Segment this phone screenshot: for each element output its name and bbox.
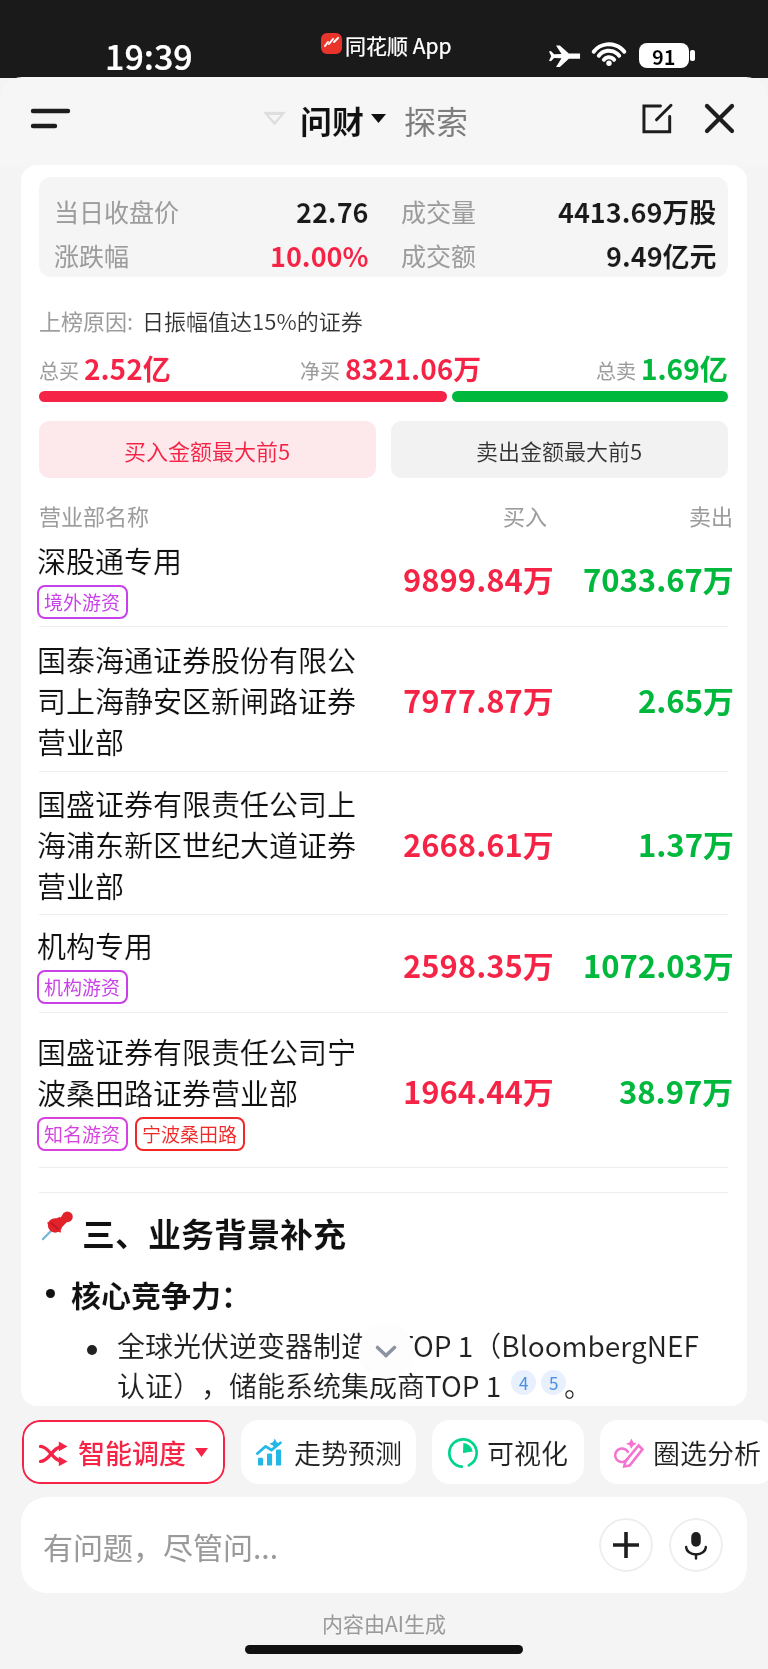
staticText: 日振幅值达15%的证券 [142, 304, 363, 336]
staticText: 涨跌幅 [54, 237, 130, 273]
staticText: 卖出金额最大前5 [476, 434, 643, 466]
staticText: 营业部 [37, 864, 125, 905]
staticText: 成交额 [401, 237, 477, 273]
staticText: 有问题，尽管问... [43, 1524, 279, 1567]
staticText: 2.65万 [638, 677, 734, 722]
staticText: 91 [652, 43, 676, 67]
staticText: 22.76 [296, 192, 369, 231]
staticText: 1.37万 [638, 821, 734, 866]
staticText: 1.69亿 [641, 348, 728, 389]
staticText: 国泰海通证券股份有限公 [37, 638, 357, 679]
staticText: 国盛证券有限责任公司上 [37, 782, 357, 823]
staticText: 2.52亿 [84, 348, 171, 389]
staticText: 上榜原因: [39, 304, 134, 336]
staticText: 波桑田路证券营业部 [37, 1071, 299, 1112]
staticText: 问财 [300, 97, 365, 143]
button[interactable]: Expand [358, 1323, 414, 1379]
staticText: 8321.06万 [345, 348, 482, 389]
button[interactable]: 探索 [404, 97, 469, 143]
staticText: 总卖 [596, 356, 636, 385]
staticText: 1072.03万 [583, 942, 734, 987]
staticText: 国盛证券有限责任公司宁 [37, 1030, 357, 1071]
staticText: 4413.69万股 [558, 192, 717, 231]
staticText: 1964.44万 [403, 1068, 554, 1113]
staticText: 2598.35万 [403, 942, 554, 987]
button[interactable]: Close [691, 90, 747, 146]
staticText: 营业部 [37, 720, 125, 761]
staticText: 9.49亿元 [606, 236, 717, 275]
staticText: 机构游资 [44, 973, 121, 1001]
staticText: 全球光伏逆变器制造商TOP 1（BloombergNEF 认证），储能系统集成商… [117, 1325, 699, 1405]
staticText: 19:39 [105, 31, 193, 80]
staticText: 2668.61万 [403, 821, 554, 866]
button[interactable]: 可视化 [432, 1420, 584, 1484]
button[interactable]: 圈选分析 [600, 1420, 768, 1484]
staticText: 深股通专用 [37, 539, 183, 580]
staticText: 机构专用 [37, 924, 154, 965]
staticText: 智能调度 [78, 1433, 186, 1472]
button[interactable]: Voice [669, 1518, 723, 1572]
staticText: 4 [519, 1370, 529, 1395]
staticText: 成交量 [401, 193, 477, 229]
staticText: 三、业务背景补充 [82, 1209, 346, 1257]
staticText: 知名游资 [44, 1120, 121, 1148]
staticText: 7033.67万 [583, 556, 734, 601]
staticText: 买入金额最大前5 [124, 434, 291, 466]
staticText: 净买 [300, 356, 340, 385]
staticText: 7977.87万 [403, 677, 554, 722]
staticText: 内容由AI生成 [322, 1608, 446, 1638]
button[interactable]: Add [599, 1518, 653, 1572]
button[interactable]: 走势预测 [241, 1420, 416, 1484]
staticText: 5 [549, 1370, 559, 1395]
staticText: 卖出 [689, 499, 734, 531]
staticText: 总买 [39, 356, 79, 385]
staticText: 同花顺 App [345, 30, 452, 60]
staticText: 宁波桑田路 [142, 1120, 238, 1148]
staticText: 买入 [503, 499, 548, 531]
staticText: 营业部名称 [39, 499, 150, 531]
button[interactable]: Edit [628, 90, 684, 146]
button[interactable]: 买入金额最大前5 [39, 421, 376, 478]
staticText: 圈选分析 [653, 1433, 761, 1472]
staticText: 走势预测 [294, 1433, 402, 1472]
staticText: 海浦东新区世纪大道证券 [37, 823, 357, 864]
staticText: 核心竞争力： [71, 1272, 251, 1315]
staticText: 当日收盘价 [54, 193, 180, 229]
staticText: 境外游资 [44, 588, 121, 616]
button[interactable]: 卖出金额最大前5 [391, 421, 728, 478]
button[interactable]: Menu [12, 91, 86, 153]
staticText: 司上海静安区新闸路证券 [37, 679, 357, 720]
staticText: 9899.84万 [403, 556, 554, 601]
button[interactable]: 智能调度 [22, 1420, 225, 1484]
staticText: 可视化 [487, 1433, 568, 1472]
staticText: 38.97万 [619, 1068, 734, 1113]
staticText: 10.00% [270, 236, 369, 275]
